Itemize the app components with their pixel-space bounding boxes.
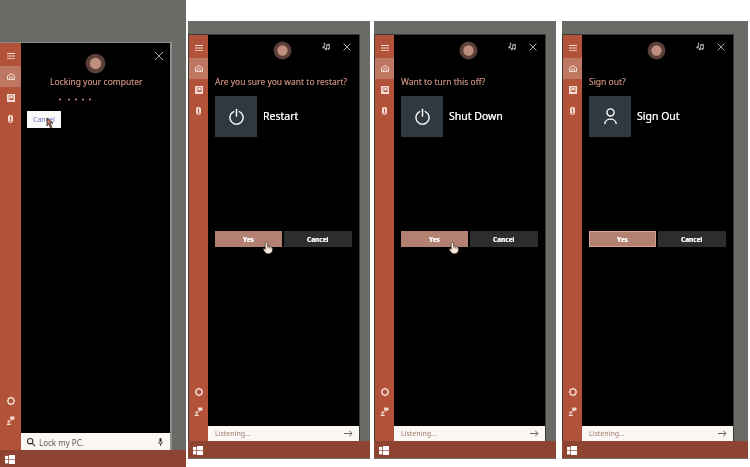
button[interactable]: Start	[3, 452, 17, 466]
button[interactable]: Yes	[401, 231, 468, 247]
button[interactable]: Home	[563, 58, 582, 79]
button[interactable]: Notebook	[563, 79, 582, 100]
button[interactable]: Settings	[375, 381, 394, 402]
button[interactable]: Notebook	[375, 79, 394, 100]
button[interactable]: Home	[0, 66, 21, 87]
button[interactable]: Music	[503, 37, 521, 55]
staticText: Cancel	[307, 235, 329, 244]
button[interactable]: Cancel	[284, 231, 352, 247]
button[interactable]: Home	[375, 58, 394, 79]
button[interactable]: Cancel	[658, 231, 726, 247]
button[interactable]: Menu	[189, 37, 208, 58]
button[interactable]: Sign Out	[589, 96, 631, 137]
staticText: Cancel	[33, 115, 55, 125]
button[interactable]: Shut Down	[401, 96, 443, 137]
button[interactable]: Menu	[563, 37, 582, 58]
staticText: Restart	[263, 109, 299, 123]
staticText: Yes	[617, 235, 628, 244]
button[interactable]: Start	[377, 443, 391, 457]
button[interactable]: Reminders	[0, 108, 21, 129]
staticText: Sign out?	[589, 76, 626, 88]
staticText: Cancel	[681, 235, 703, 244]
button[interactable]: Menu	[0, 45, 21, 66]
button[interactable]: Reminders	[563, 100, 582, 121]
staticText: Sign Out	[637, 109, 680, 123]
button[interactable]: Notebook	[189, 79, 208, 100]
button[interactable]: Close	[149, 46, 169, 66]
staticText: Cancel	[493, 235, 515, 244]
button[interactable]: Yes	[215, 231, 282, 247]
button[interactable]: Music	[317, 37, 335, 55]
staticText: Listening...	[401, 429, 437, 439]
staticText: Locking your computer	[50, 76, 143, 88]
button[interactable]: Cancel	[470, 231, 538, 247]
button[interactable]: Close	[712, 38, 730, 56]
staticText: Listening...	[589, 429, 625, 439]
staticText: Lock my PC.	[39, 437, 84, 448]
button[interactable]: Start	[191, 443, 205, 457]
button[interactable]: Close	[524, 38, 542, 56]
button[interactable]: Home	[189, 58, 208, 79]
button[interactable]: Start	[565, 443, 579, 457]
button[interactable]: Reminders	[189, 100, 208, 121]
button[interactable]: Reminders	[375, 100, 394, 121]
button[interactable]: Feedback	[189, 401, 208, 422]
staticText: Want to turn this off?	[401, 76, 486, 88]
button[interactable]: Settings	[189, 381, 208, 402]
staticText: Shut Down	[449, 109, 503, 123]
button[interactable]: Notebook	[0, 87, 21, 108]
button[interactable]: Yes	[590, 232, 655, 246]
staticText: Listening...	[215, 429, 251, 439]
staticText: Yes	[429, 235, 440, 244]
button[interactable]: Restart	[215, 96, 257, 137]
button[interactable]: Feedback	[0, 410, 21, 431]
button[interactable]: Menu	[375, 37, 394, 58]
button[interactable]: Settings	[0, 390, 21, 411]
button[interactable]: Music	[691, 37, 709, 55]
staticText: Are you sure you want to restart?	[215, 76, 348, 88]
button[interactable]: Settings	[563, 381, 582, 402]
button[interactable]: Feedback	[563, 401, 582, 422]
button[interactable]: Close	[338, 38, 356, 56]
button[interactable]: Feedback	[375, 401, 394, 422]
staticText: Yes	[243, 235, 254, 244]
button[interactable]: Cancel	[27, 111, 61, 128]
